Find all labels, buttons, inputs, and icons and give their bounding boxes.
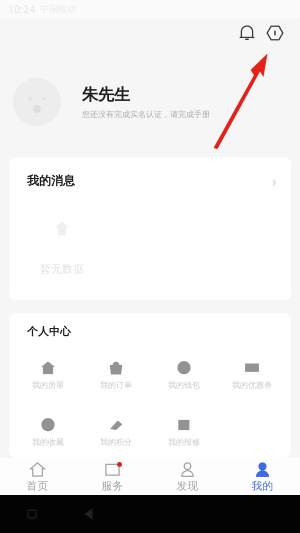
- staticText: 我的报修: [168, 437, 200, 447]
- staticText: 个人中心: [27, 325, 71, 338]
- staticText: 朱先生: [82, 85, 130, 104]
- staticText: 我的订单: [100, 380, 132, 390]
- staticText: 我的积分: [100, 437, 132, 447]
- staticText: 中国移动: [40, 3, 76, 15]
- staticText: 您还没有完成实名认证，请完成手册: [82, 109, 210, 119]
- staticText: 发现: [176, 479, 198, 492]
- staticText: 首页: [26, 479, 48, 492]
- button[interactable]: 我的房屋: [14, 355, 82, 395]
- button[interactable]: 我的: [225, 456, 300, 496]
- staticText: 我的房屋: [32, 380, 64, 390]
- button[interactable]: 我的订单: [82, 355, 150, 395]
- button[interactable]: 我的优惠券: [218, 355, 286, 395]
- staticText: 我的优惠券: [232, 380, 272, 390]
- staticText: 我的: [251, 479, 273, 492]
- button[interactable]: 我的收藏: [14, 412, 82, 452]
- staticText: 我的收藏: [32, 437, 64, 447]
- button[interactable]: 发现: [150, 456, 225, 496]
- staticText: 我的钱包: [168, 380, 200, 390]
- button[interactable]: Settings: [261, 19, 289, 47]
- button[interactable]: 首页: [0, 456, 75, 496]
- staticText: ›: [272, 171, 277, 190]
- button[interactable]: 服务: [75, 456, 150, 496]
- button[interactable]: 我的钱包: [150, 355, 218, 395]
- button[interactable]: 我的积分: [82, 412, 150, 452]
- staticText: 暂无数据: [40, 262, 84, 276]
- staticText: 10:24: [8, 2, 35, 16]
- staticText: 服务: [101, 479, 123, 492]
- button[interactable]: Back: [78, 503, 100, 525]
- button[interactable]: Notifications: [233, 19, 261, 47]
- staticText: 我的消息: [27, 173, 75, 188]
- button[interactable]: Recents: [21, 503, 43, 525]
- button[interactable]: 我的报修: [150, 412, 218, 452]
